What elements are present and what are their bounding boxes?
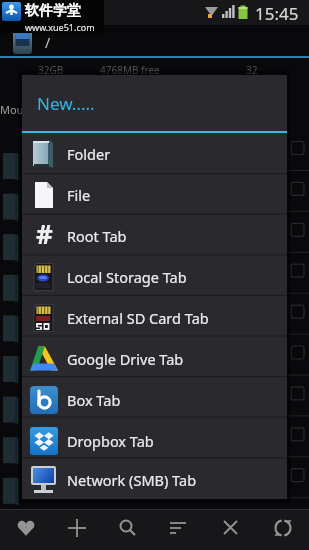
staticText: 32 (246, 63, 258, 77)
staticText: www.xue51.com (25, 21, 95, 33)
button[interactable]: Local Storage Tab (22, 256, 287, 297)
button[interactable]: Box Tab (22, 379, 287, 420)
staticText: 15:45 (255, 2, 299, 25)
button[interactable]: Dropbox Tab (22, 420, 287, 461)
button[interactable] (153, 509, 205, 550)
staticText: File (67, 185, 91, 205)
staticText: Local Storage Tab (67, 267, 187, 287)
staticText: 软件学堂 (25, 2, 81, 20)
button[interactable]: File (22, 174, 287, 215)
staticText: Google Drive Tab (67, 349, 184, 369)
button[interactable]: Network (SMB) Tab (22, 461, 287, 499)
button[interactable]: Root Tab (22, 215, 287, 256)
button[interactable] (102, 509, 153, 550)
staticText: Network (SMB) Tab (67, 470, 197, 490)
button[interactable] (0, 509, 51, 550)
button[interactable]: External SD Card Tab (22, 297, 287, 338)
staticText: / (45, 33, 51, 52)
button[interactable]: Folder (22, 133, 287, 174)
staticText: 4768MB free (100, 63, 160, 77)
staticText: New..... (37, 92, 95, 115)
staticText: Dropbox Tab (67, 431, 154, 451)
button[interactable]: Google Drive Tab (22, 338, 287, 379)
staticText: External SD Card Tab (67, 308, 209, 328)
staticText: # (36, 216, 53, 251)
button[interactable] (51, 509, 102, 550)
staticText: Mou (0, 102, 24, 117)
staticText: 32GB (38, 63, 64, 77)
staticText: Folder (67, 144, 111, 164)
staticText: Root Tab (67, 226, 127, 246)
staticText: Box Tab (67, 390, 121, 410)
button[interactable] (257, 509, 309, 550)
button[interactable] (205, 509, 257, 550)
